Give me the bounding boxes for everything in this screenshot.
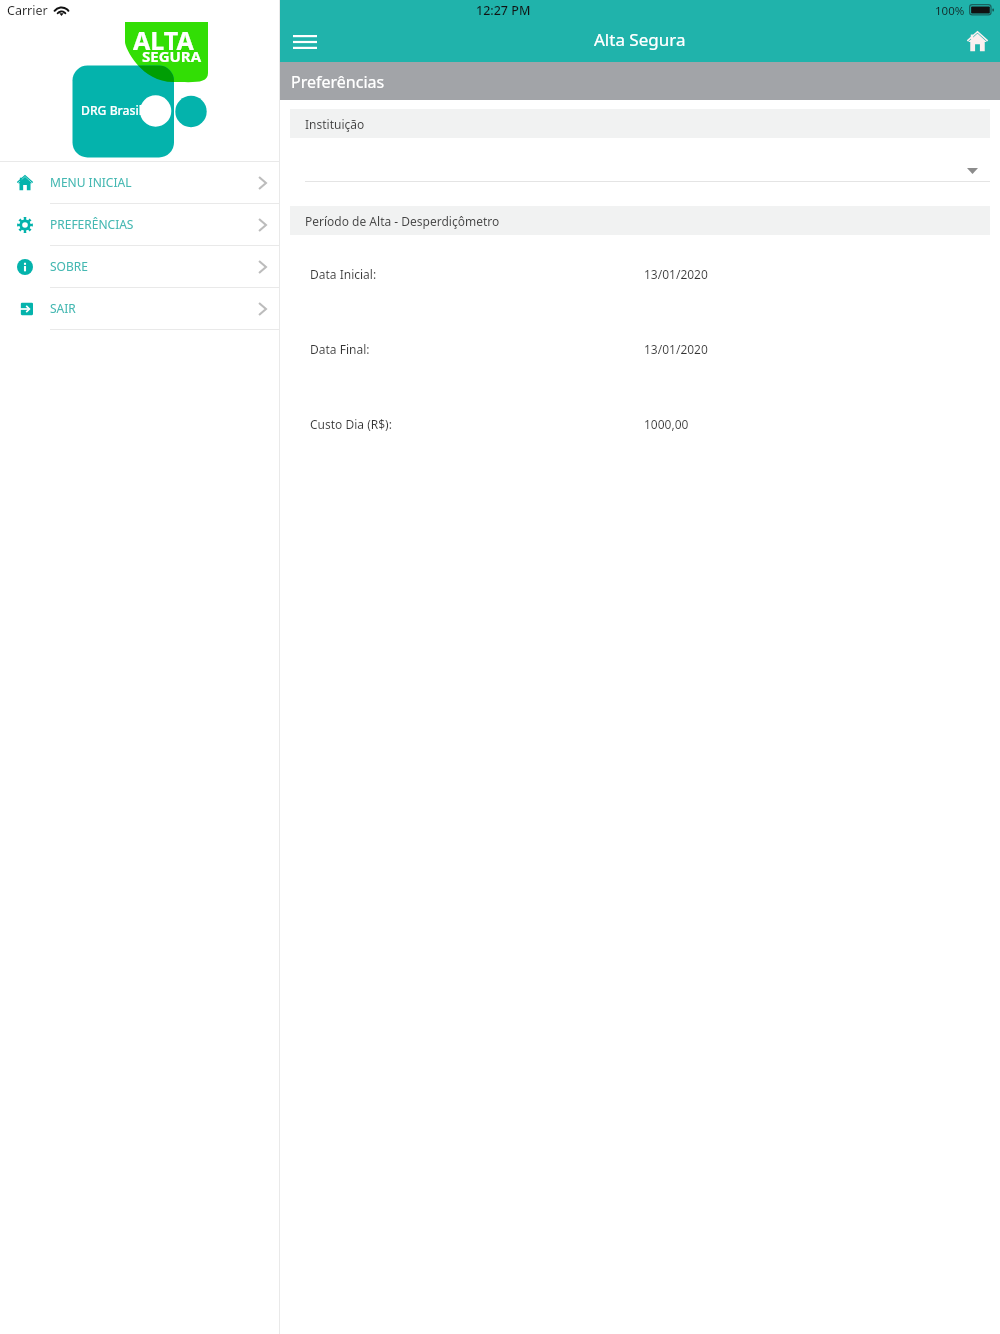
staticText: Custo Dia (R$): [310,416,392,432]
staticText: Data Inicial: [310,266,377,282]
staticText: 13/01/2020 [644,266,708,282]
staticText: 13/01/2020 [644,341,708,357]
staticText: Instituição [305,116,365,132]
staticText: DRG Brasil [81,102,142,119]
button[interactable]: MENU INICIAL [0,162,280,204]
staticText: 100% [935,3,965,19]
staticText: SAIR [50,300,76,316]
staticText: SOBRE [50,258,88,274]
staticText: Data Final: [310,341,370,357]
staticText: Período de Alta - Desperdiçômetro [305,213,500,229]
button[interactable]: PREFERÊNCIAS [0,204,280,246]
button[interactable]: SOBRE [0,246,280,288]
staticText: SEGURA [142,46,202,66]
staticText: MENU INICIAL [50,174,132,190]
staticText: Preferências [291,71,385,93]
staticText: Alta Segura [594,28,686,51]
button[interactable]: Selecionar instituição [305,145,990,182]
button[interactable]: SAIR [0,288,280,330]
button[interactable]: Home [956,20,998,62]
staticText: PREFERÊNCIAS [50,216,134,232]
staticText: ALTA [133,23,194,57]
staticText: 12:27 PM [476,2,531,19]
button[interactable]: Open navigation menu [283,21,327,63]
staticText: 1000,00 [644,416,689,432]
staticText: Carrier [7,2,48,19]
